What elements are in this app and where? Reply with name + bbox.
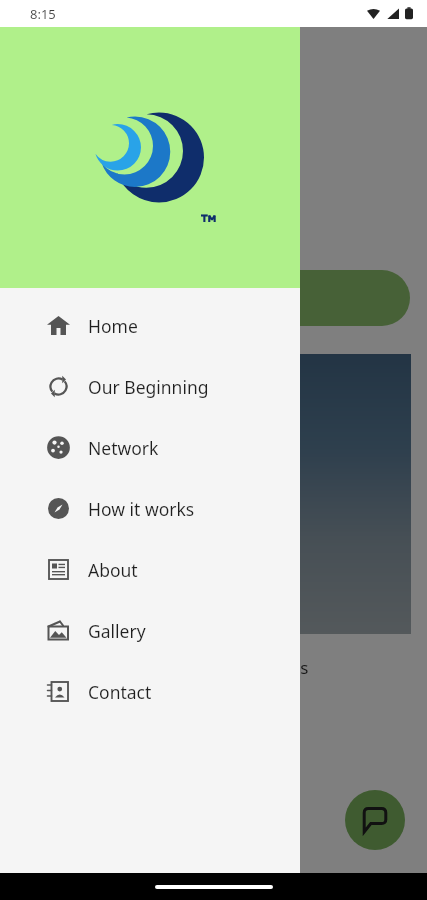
button[interactable]: Home [0,295,300,356]
staticText: Home [88,314,138,338]
staticText: Network [88,436,159,460]
button[interactable] [130,270,410,326]
button[interactable]: Open chat [345,790,405,850]
staticText: 8:15 [30,5,56,23]
staticText: About [88,558,138,582]
staticText: How it works [88,497,195,521]
button[interactable]: About [0,539,300,600]
button[interactable]: Gallery [0,600,300,661]
staticText: Gallery [88,619,146,643]
button[interactable]: Contact [0,661,300,722]
staticText: numerous locations [150,656,309,679]
button[interactable]: Our Beginning [0,356,300,417]
staticText: Contact [88,680,152,704]
staticText: Wifi [130,122,251,206]
button[interactable] [0,27,427,900]
staticText: Our Beginning [88,375,209,399]
button[interactable]: Network [0,417,300,478]
button[interactable]: How it works [0,478,300,539]
